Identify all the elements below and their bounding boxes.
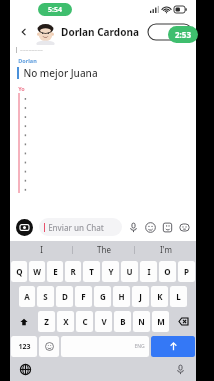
button[interactable]: O	[159, 261, 176, 282]
button[interactable]: Enviar un Chat	[39, 218, 122, 236]
button[interactable]: 123	[11, 336, 37, 357]
staticText: N	[138, 316, 145, 327]
staticText: M	[157, 316, 165, 327]
button[interactable]: Camera	[16, 219, 33, 236]
staticText: T	[89, 266, 94, 277]
staticText: O	[164, 266, 171, 277]
staticText: I	[147, 266, 151, 277]
button[interactable]: R	[65, 261, 81, 282]
button[interactable]: C	[76, 311, 93, 332]
staticText: Dorlan	[18, 57, 37, 64]
staticText: The	[97, 244, 111, 255]
button[interactable]: X	[57, 311, 74, 332]
button[interactable]: M	[152, 311, 169, 332]
staticText: I	[40, 244, 43, 255]
staticText: 123	[18, 342, 31, 352]
button[interactable]: H	[113, 286, 130, 307]
staticText: J	[139, 291, 142, 302]
button[interactable]: A	[19, 286, 35, 307]
staticText: 5:54	[48, 5, 62, 15]
staticText: H	[118, 291, 125, 302]
button[interactable]: Space	[61, 336, 149, 357]
button[interactable]: Voice note	[126, 220, 140, 234]
button[interactable]: Q	[11, 261, 27, 282]
button[interactable]: N	[133, 311, 150, 332]
button[interactable]: D	[56, 286, 73, 307]
staticText: Yo	[18, 85, 25, 92]
staticText: S	[43, 291, 48, 302]
staticText: 2:53	[175, 29, 191, 40]
staticText: B	[120, 316, 126, 327]
button[interactable]: I	[10, 241, 72, 258]
staticText: Q	[16, 266, 23, 277]
staticText: G	[100, 291, 106, 302]
staticText: U	[126, 266, 133, 277]
button[interactable]: B	[114, 311, 131, 332]
staticText: P	[184, 266, 189, 277]
button[interactable]: P	[178, 261, 195, 282]
staticText: F	[81, 291, 86, 302]
staticText: Z	[44, 316, 49, 327]
staticText: I'm	[160, 244, 172, 255]
button[interactable]: Change language	[18, 362, 32, 376]
button[interactable]: Emoji keyboard	[39, 336, 59, 357]
button[interactable]: The	[73, 241, 134, 258]
staticText: X	[63, 316, 69, 327]
button[interactable]: U	[121, 261, 138, 282]
staticText: Enviar un Chat	[48, 222, 104, 233]
button[interactable]: T	[83, 261, 100, 282]
staticText: No mejor Juana	[23, 66, 98, 80]
staticText: V	[101, 316, 107, 327]
button[interactable]: G	[94, 286, 111, 307]
button[interactable]: Send	[151, 336, 195, 357]
button[interactable]: Shift	[11, 311, 36, 332]
staticText: E	[53, 266, 58, 277]
staticText: Y	[108, 266, 114, 277]
button[interactable]: K	[151, 286, 168, 307]
staticText: K	[157, 291, 163, 302]
staticText: W	[33, 266, 41, 277]
button[interactable]: W	[29, 261, 45, 282]
staticText: A	[24, 291, 30, 302]
button[interactable]: J	[132, 286, 149, 307]
button[interactable]: I'm	[135, 241, 196, 258]
button[interactable]: Y	[102, 261, 119, 282]
button[interactable]: Emoji	[143, 220, 157, 234]
staticText: L	[176, 291, 181, 302]
staticText: ~~~~~~~~	[20, 47, 43, 54]
button[interactable]: L	[170, 286, 187, 307]
button[interactable]: Z	[38, 311, 55, 332]
button[interactable]: Stickers	[160, 220, 174, 234]
button[interactable]: Voice input	[173, 362, 187, 376]
button[interactable]: V	[95, 311, 112, 332]
staticText: ENG	[134, 343, 145, 350]
button[interactable]: 2:53	[168, 26, 198, 43]
staticText: D	[62, 291, 68, 302]
button[interactable]: S	[37, 286, 54, 307]
staticText: Dorlan Cardona	[61, 25, 139, 39]
staticText: C	[82, 316, 88, 327]
button[interactable]: I	[140, 261, 157, 282]
staticText: R	[70, 266, 76, 277]
button[interactable]: Backspace	[171, 311, 195, 332]
button[interactable]: Bitmoji	[177, 220, 191, 234]
button[interactable]: E	[47, 261, 63, 282]
button[interactable]: Back	[16, 24, 32, 40]
button[interactable]: Profile avatar	[34, 21, 56, 43]
button[interactable]: F	[75, 286, 92, 307]
